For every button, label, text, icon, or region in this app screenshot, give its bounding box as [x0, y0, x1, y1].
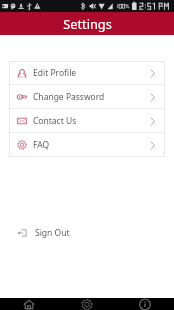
- button[interactable]: Contact Us: [9, 109, 165, 133]
- staticText: Contact Us: [33, 115, 77, 127]
- staticText: FAQ: [33, 139, 50, 151]
- staticText: Change Password: [33, 91, 105, 103]
- button[interactable]: Change Password: [9, 85, 165, 109]
- button[interactable]: Settings: [58, 298, 116, 310]
- button[interactable]: Info: [116, 298, 174, 310]
- staticText: Settings: [63, 15, 112, 32]
- staticText: Sign Out: [35, 227, 70, 239]
- button[interactable]: FAQ: [9, 133, 165, 157]
- button[interactable]: Edit Profile: [9, 61, 165, 85]
- button[interactable]: Sign Out: [0, 223, 174, 243]
- button[interactable]: Home: [0, 298, 58, 310]
- staticText: Edit Profile: [33, 67, 77, 79]
